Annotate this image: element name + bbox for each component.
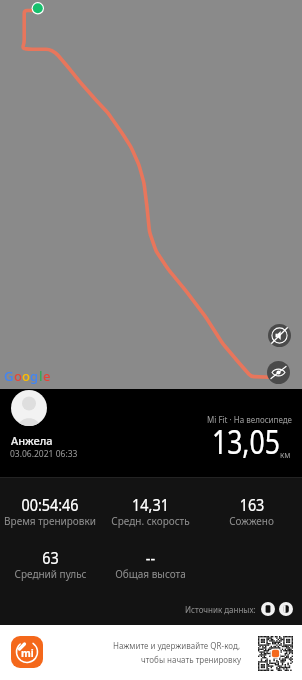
button[interactable]: Mute voice guidance (268, 324, 291, 347)
staticText: o (14, 367, 22, 385)
staticText: 163 (239, 494, 265, 516)
staticText: Общая высота (115, 567, 186, 581)
staticText: l (39, 367, 43, 385)
button[interactable]: Phone data source (261, 602, 275, 616)
staticText: Mi Fit · На велосипеде (207, 414, 292, 425)
button[interactable]: 14,31 (100, 498, 201, 528)
staticText: Анжела (11, 433, 53, 448)
button[interactable]: Profile photo (11, 390, 47, 426)
button[interactable]: -- (100, 551, 201, 581)
button[interactable]: Hide map details (267, 361, 290, 384)
staticText: 63 (42, 547, 59, 569)
staticText: -- (146, 547, 155, 569)
staticText: 03.06.2021 06:33 (10, 448, 78, 460)
staticText: 14,31 (132, 494, 169, 516)
button[interactable]: Mi Fit (11, 636, 43, 668)
staticText: 00:54:46 (21, 494, 79, 516)
button[interactable]: Watch data source (279, 602, 293, 616)
staticText: км (280, 449, 291, 460)
staticText: Средний пульс (14, 567, 87, 581)
button[interactable]: QR code (258, 636, 293, 671)
staticText: чтобы начать тренировку (141, 654, 241, 665)
staticText: Время тренировки (4, 514, 96, 528)
button[interactable]: 163 (201, 498, 302, 528)
staticText: Источник данных: (185, 604, 256, 615)
staticText: g (30, 367, 39, 385)
staticText: Средн. скорость (111, 514, 190, 528)
staticText: Нажмите и удерживайте QR-код, (113, 640, 241, 651)
staticText: G (4, 367, 14, 385)
staticText: e (43, 367, 51, 385)
staticText: mi (21, 646, 34, 660)
button[interactable]: 63 (0, 551, 100, 581)
staticText: o (22, 367, 30, 385)
staticText: Сожжено (229, 514, 274, 528)
button[interactable]: 00:54:46 (0, 498, 100, 528)
staticText: 13,05 (212, 420, 280, 464)
